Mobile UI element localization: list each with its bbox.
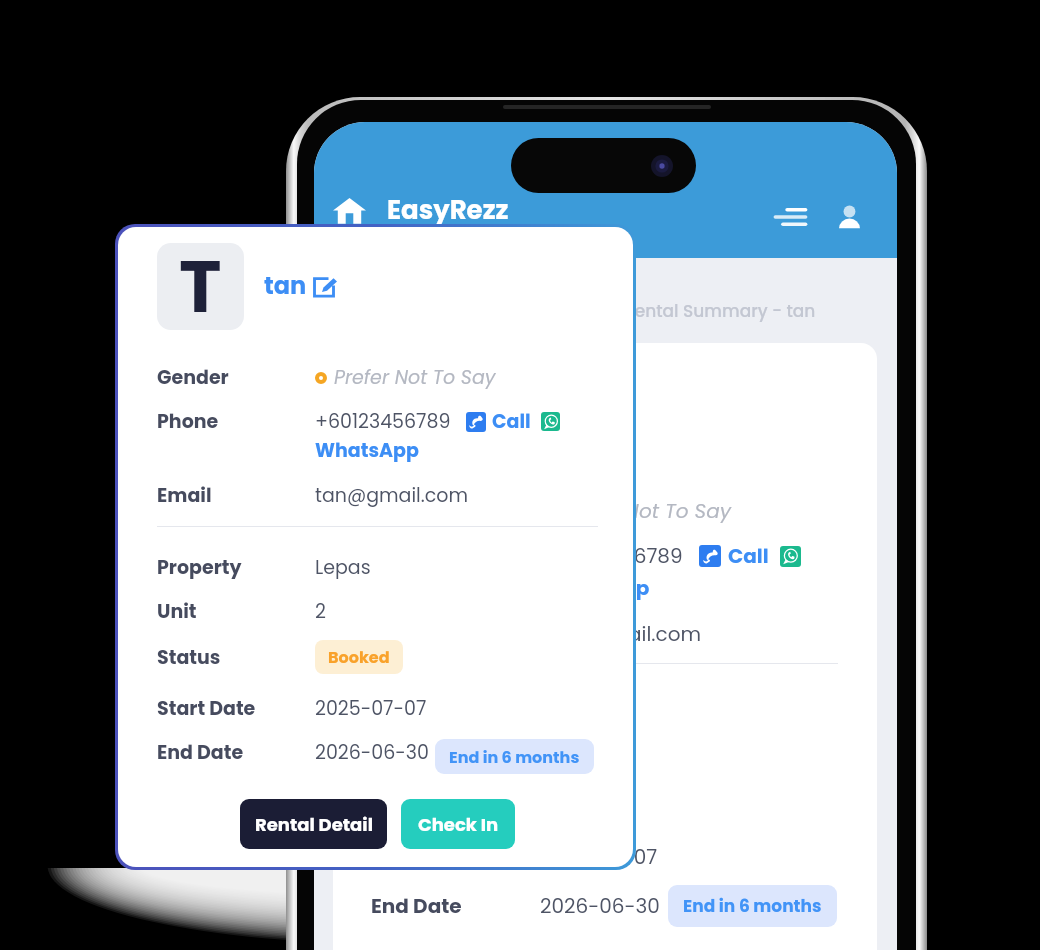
staticText: Check In [418,812,499,837]
staticText: End in 6 months [449,746,580,768]
staticText: Status [157,644,221,671]
staticText: 2 [315,598,326,625]
staticText: tan@gmail.com [315,482,469,509]
staticText: Call [492,408,531,435]
staticText: Start Date [157,695,256,722]
staticText: End Date [371,892,462,920]
staticText: Lepas [315,554,371,581]
staticText: Call [728,542,769,570]
staticText: 2025-07-07 [540,843,658,871]
button[interactable]: Check In [401,799,515,849]
button[interactable]: EasyRezz [333,187,509,233]
staticText: Booked [328,646,390,668]
staticText: End in 6 months [683,894,822,918]
staticText: WhatsApp [315,437,419,464]
staticText: EasyRezz [387,192,509,228]
staticText: 2025-07-07 [315,695,427,722]
button[interactable]: Call [466,408,531,435]
staticText: T [179,243,222,323]
staticText: 2026-06-30 [315,739,429,766]
staticText: Rental Detail [255,812,373,837]
button[interactable]: WhatsApp [540,564,650,612]
staticText: tan [264,269,307,303]
button[interactable]: Account [825,194,873,242]
button[interactable]: WhatsApp [541,412,560,431]
staticText: +60123456789 [315,408,451,435]
staticText: WhatsApp [540,574,650,602]
button[interactable]: Call [699,542,769,570]
staticText: Prefer Not To Say [334,364,496,391]
staticText: Rental Summary - tan [624,299,816,323]
button[interactable]: Rental Detail [240,799,387,849]
staticText: Property [157,554,242,581]
staticText: tan@gmail.com [540,620,702,648]
button[interactable]: Profile avatar T [157,243,244,330]
staticText: 2026-06-30 [540,892,660,920]
staticText: +60123456789 [540,542,683,570]
staticText: Unit [157,598,197,625]
staticText: End Date [157,739,244,766]
button[interactable]: WhatsApp [780,546,801,567]
staticText: Prefer Not To Say [561,497,731,525]
staticText: Gender [157,364,229,391]
staticText: Email [157,482,212,509]
button[interactable]: WhatsApp [315,428,419,472]
staticText: Start Date [371,843,475,871]
button[interactable]: tan [264,268,337,304]
staticText: Phone [157,408,219,435]
button[interactable]: Menu [769,193,817,241]
